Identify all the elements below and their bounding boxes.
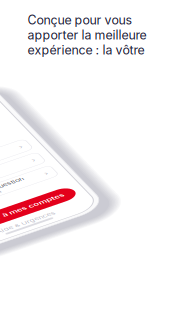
- staticText: Mes notifications: [30, 235, 116, 248]
- staticText: Conçue pour vous apporter la meilleure e…: [27, 12, 146, 57]
- button[interactable]: Mes notifications: [20, 224, 174, 259]
- staticText: Mes opérations: [30, 189, 108, 202]
- button[interactable]: Mes opérations: [20, 178, 174, 213]
